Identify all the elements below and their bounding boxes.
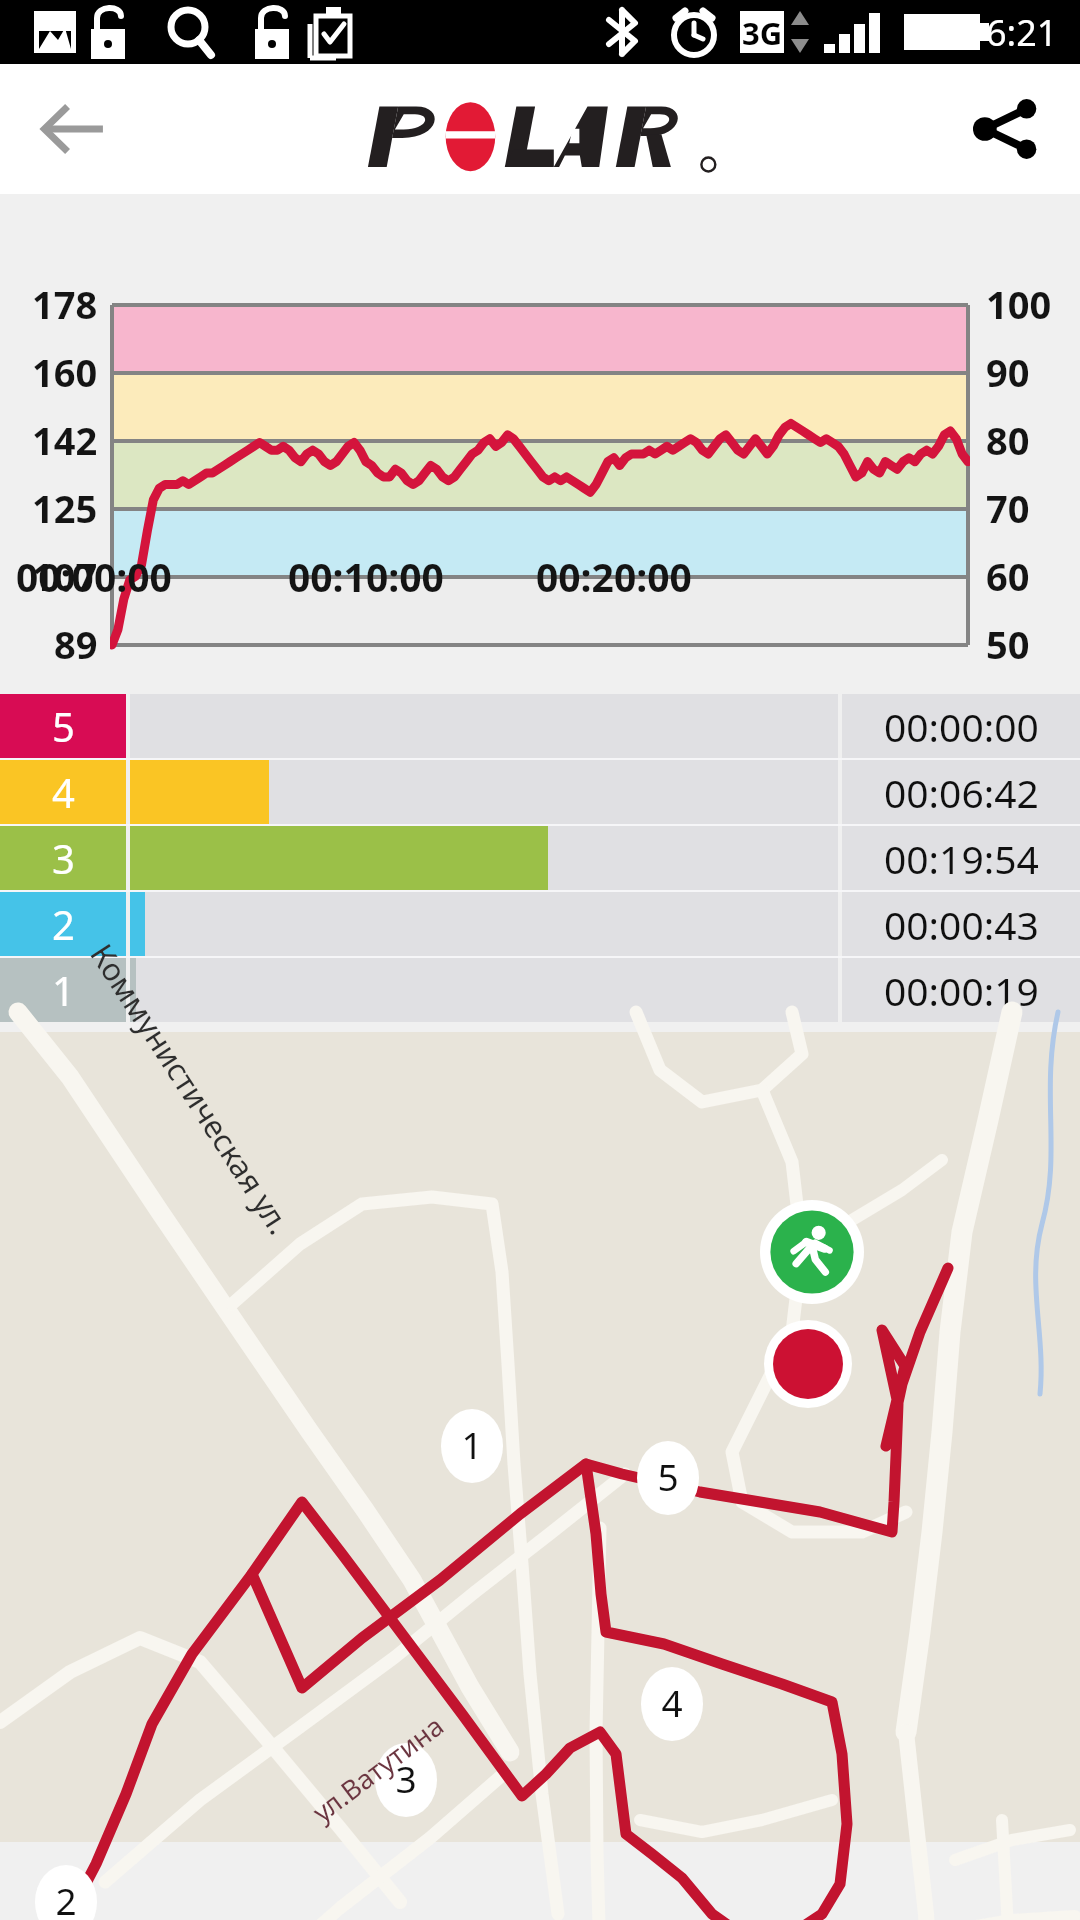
staticText: 142	[32, 414, 98, 466]
staticText: 3G	[742, 12, 783, 54]
button[interactable]: 4	[0, 760, 1080, 824]
button[interactable]: 3	[0, 826, 1080, 890]
button[interactable]: 2	[0, 892, 1080, 956]
staticText: Коммунистическая ул.	[82, 935, 301, 1243]
staticText: 178	[32, 278, 98, 330]
staticText: 89	[54, 618, 98, 670]
staticText: 50	[986, 618, 1030, 670]
staticText: 1	[52, 963, 75, 1017]
button[interactable]: 1	[0, 1032, 1080, 1842]
staticText: 3	[52, 831, 75, 885]
staticText: 5	[657, 1451, 679, 1499]
staticText: 70	[986, 482, 1030, 534]
staticText: 160	[32, 346, 98, 398]
staticText: 6:21	[986, 8, 1058, 57]
staticText: 100	[986, 278, 1052, 330]
staticText: 107	[32, 550, 98, 602]
staticText: ул.Ватутина	[304, 1707, 451, 1830]
staticText: 00:20:00	[536, 550, 692, 603]
staticText: 5	[52, 699, 75, 753]
staticText: 125	[32, 482, 98, 534]
staticText: 4	[661, 1677, 683, 1725]
staticText: 00:06:42	[884, 766, 1039, 819]
staticText: 80	[986, 414, 1030, 466]
button[interactable]: Back	[30, 86, 116, 172]
button[interactable]: 1	[0, 958, 1080, 1022]
staticText: 00:00:00	[16, 550, 172, 603]
staticText: 2	[55, 1875, 77, 1920]
staticText: 00:00:00	[884, 700, 1039, 753]
button[interactable]: Share	[960, 84, 1050, 174]
staticText: 00:00:19	[884, 964, 1039, 1017]
staticText: 00:10:00	[288, 550, 444, 603]
button[interactable]: 5	[0, 694, 1080, 758]
staticText: 90	[986, 346, 1030, 398]
staticText: 4	[52, 765, 75, 819]
staticText: 3	[395, 1753, 417, 1801]
staticText: 1	[461, 1419, 483, 1467]
staticText: 2	[52, 897, 75, 951]
staticText: 60	[986, 550, 1030, 602]
staticText: 00:19:54	[884, 832, 1039, 885]
staticText: 00:00:43	[884, 898, 1039, 951]
